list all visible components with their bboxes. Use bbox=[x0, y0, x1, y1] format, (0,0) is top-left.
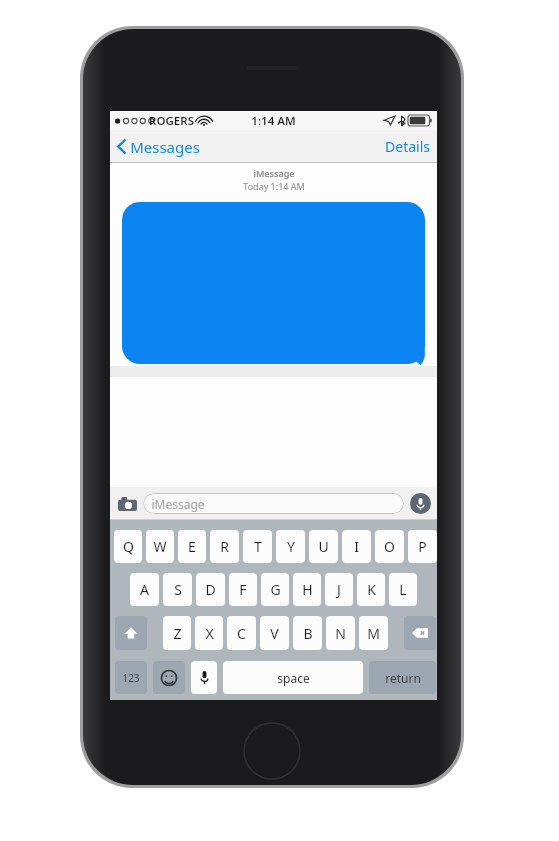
button[interactable]: V bbox=[260, 616, 289, 650]
staticText: D bbox=[205, 580, 216, 599]
staticText: E bbox=[188, 537, 196, 556]
staticText: N bbox=[335, 624, 346, 643]
staticText: return bbox=[385, 670, 421, 686]
staticText: Today 1:14 AM bbox=[243, 180, 305, 192]
staticText: iMessage bbox=[253, 167, 295, 179]
button[interactable]: I bbox=[342, 530, 371, 563]
staticText: H bbox=[302, 580, 313, 599]
staticText: J bbox=[337, 580, 341, 599]
staticText: R bbox=[220, 537, 229, 556]
button[interactable]: B bbox=[293, 616, 322, 650]
button[interactable]: T bbox=[243, 530, 272, 563]
staticText: W bbox=[153, 537, 167, 556]
button[interactable]: space bbox=[223, 661, 363, 694]
button[interactable]: P bbox=[408, 530, 437, 563]
button[interactable]: Messages bbox=[114, 130, 203, 163]
button[interactable]: Camera bbox=[116, 493, 138, 515]
button[interactable]: D bbox=[196, 573, 225, 606]
staticText: X bbox=[205, 624, 214, 643]
staticText: B bbox=[303, 624, 313, 643]
button[interactable]: F bbox=[229, 573, 257, 606]
button[interactable]: G bbox=[261, 573, 289, 606]
button[interactable]: R bbox=[210, 530, 239, 563]
staticText: K bbox=[367, 580, 376, 599]
staticText: Messages bbox=[130, 137, 200, 157]
staticText: G bbox=[270, 580, 281, 599]
staticText: C bbox=[237, 624, 246, 643]
button[interactable]: E bbox=[178, 530, 206, 563]
button[interactable]: O bbox=[375, 530, 404, 563]
button[interactable]: 123 bbox=[115, 661, 147, 694]
staticText: A bbox=[140, 580, 149, 599]
staticText: Q bbox=[123, 537, 134, 556]
staticText: L bbox=[399, 580, 407, 599]
button[interactable]: Q bbox=[114, 530, 142, 563]
button[interactable]: Backspace bbox=[404, 616, 436, 650]
button[interactable]: Y bbox=[276, 530, 305, 563]
button[interactable]: K bbox=[357, 573, 385, 606]
staticText: P bbox=[418, 537, 427, 556]
staticText: space bbox=[277, 670, 310, 686]
button[interactable]: L bbox=[389, 573, 417, 606]
staticText: ROGERS bbox=[149, 113, 194, 129]
button[interactable]: C bbox=[227, 616, 256, 650]
button[interactable] bbox=[122, 202, 425, 364]
button[interactable]: H bbox=[293, 573, 321, 606]
button[interactable]: Dictate bbox=[410, 493, 431, 514]
button[interactable]: Shift bbox=[115, 616, 147, 650]
button[interactable]: iMessage bbox=[143, 493, 404, 514]
staticText: T bbox=[254, 537, 262, 556]
button[interactable]: M bbox=[359, 616, 388, 650]
staticText: Details bbox=[385, 137, 430, 156]
button[interactable]: X bbox=[195, 616, 223, 650]
button[interactable]: Emoji bbox=[153, 661, 185, 694]
button[interactable]: N bbox=[326, 616, 355, 650]
button[interactable]: Details bbox=[378, 130, 437, 163]
staticText: 1:14 AM bbox=[251, 113, 296, 129]
button[interactable]: U bbox=[309, 530, 338, 563]
staticText: I bbox=[354, 537, 359, 556]
staticText: U bbox=[318, 537, 329, 556]
staticText: 123 bbox=[122, 671, 140, 685]
button[interactable]: Z bbox=[163, 616, 191, 650]
button[interactable]: W bbox=[146, 530, 174, 563]
staticText: S bbox=[174, 580, 182, 599]
staticText: Z bbox=[173, 624, 182, 643]
button[interactable]: return bbox=[369, 661, 436, 694]
staticText: O bbox=[384, 537, 395, 556]
button[interactable]: J bbox=[325, 573, 353, 606]
button[interactable]: S bbox=[163, 573, 192, 606]
staticText: iMessage bbox=[151, 496, 205, 512]
staticText: Y bbox=[287, 537, 295, 556]
staticText: V bbox=[270, 624, 279, 643]
button[interactable]: Dictation bbox=[191, 661, 217, 694]
staticText: M bbox=[367, 624, 380, 643]
button[interactable]: A bbox=[130, 573, 159, 606]
staticText: F bbox=[239, 580, 247, 599]
